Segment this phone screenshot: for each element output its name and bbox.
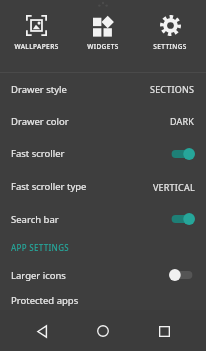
other: Wallpapers: [26, 15, 47, 36]
button[interactable]: Widgets: [72, 13, 134, 52]
staticText: Drawer style: [11, 83, 150, 96]
button[interactable]: Protected apps: [0, 291, 206, 310]
staticText: Fast scroller: [11, 147, 169, 160]
staticText: VERTICAL: [153, 181, 195, 193]
other: Settings: [160, 15, 181, 36]
staticText: Search bar: [11, 213, 169, 226]
staticText: Protected apps: [11, 294, 195, 307]
staticText: WALLPAPERS: [14, 42, 59, 51]
other: Widgets: [93, 15, 114, 36]
button[interactable]: Wallpapers: [5, 13, 67, 52]
staticText: WIDGETS: [87, 42, 119, 51]
button[interactable]: Larger icons: [0, 259, 206, 291]
staticText: SETTINGS: [153, 42, 187, 51]
button[interactable]: Search bar: [0, 203, 206, 235]
button[interactable]: Drawer style: [0, 73, 206, 105]
staticText: Fast scroller type: [11, 180, 153, 193]
button[interactable]: Home: [84, 312, 122, 350]
staticText: Drawer color: [11, 115, 170, 128]
staticText: DARK: [170, 115, 195, 127]
other: On: [169, 147, 195, 161]
other: On: [169, 212, 195, 226]
button[interactable]: Settings: [139, 13, 201, 52]
other: Off: [169, 268, 195, 282]
button[interactable]: Fast scroller: [0, 137, 206, 170]
button[interactable]: Recent apps: [145, 312, 183, 350]
button[interactable]: Drawer color: [0, 105, 206, 137]
button[interactable]: Back: [23, 312, 61, 350]
staticText: Larger icons: [11, 269, 169, 282]
staticText: APP SETTINGS: [11, 242, 69, 253]
staticText: SECTIONS: [150, 83, 195, 95]
button[interactable]: Fast scroller type: [0, 170, 206, 203]
